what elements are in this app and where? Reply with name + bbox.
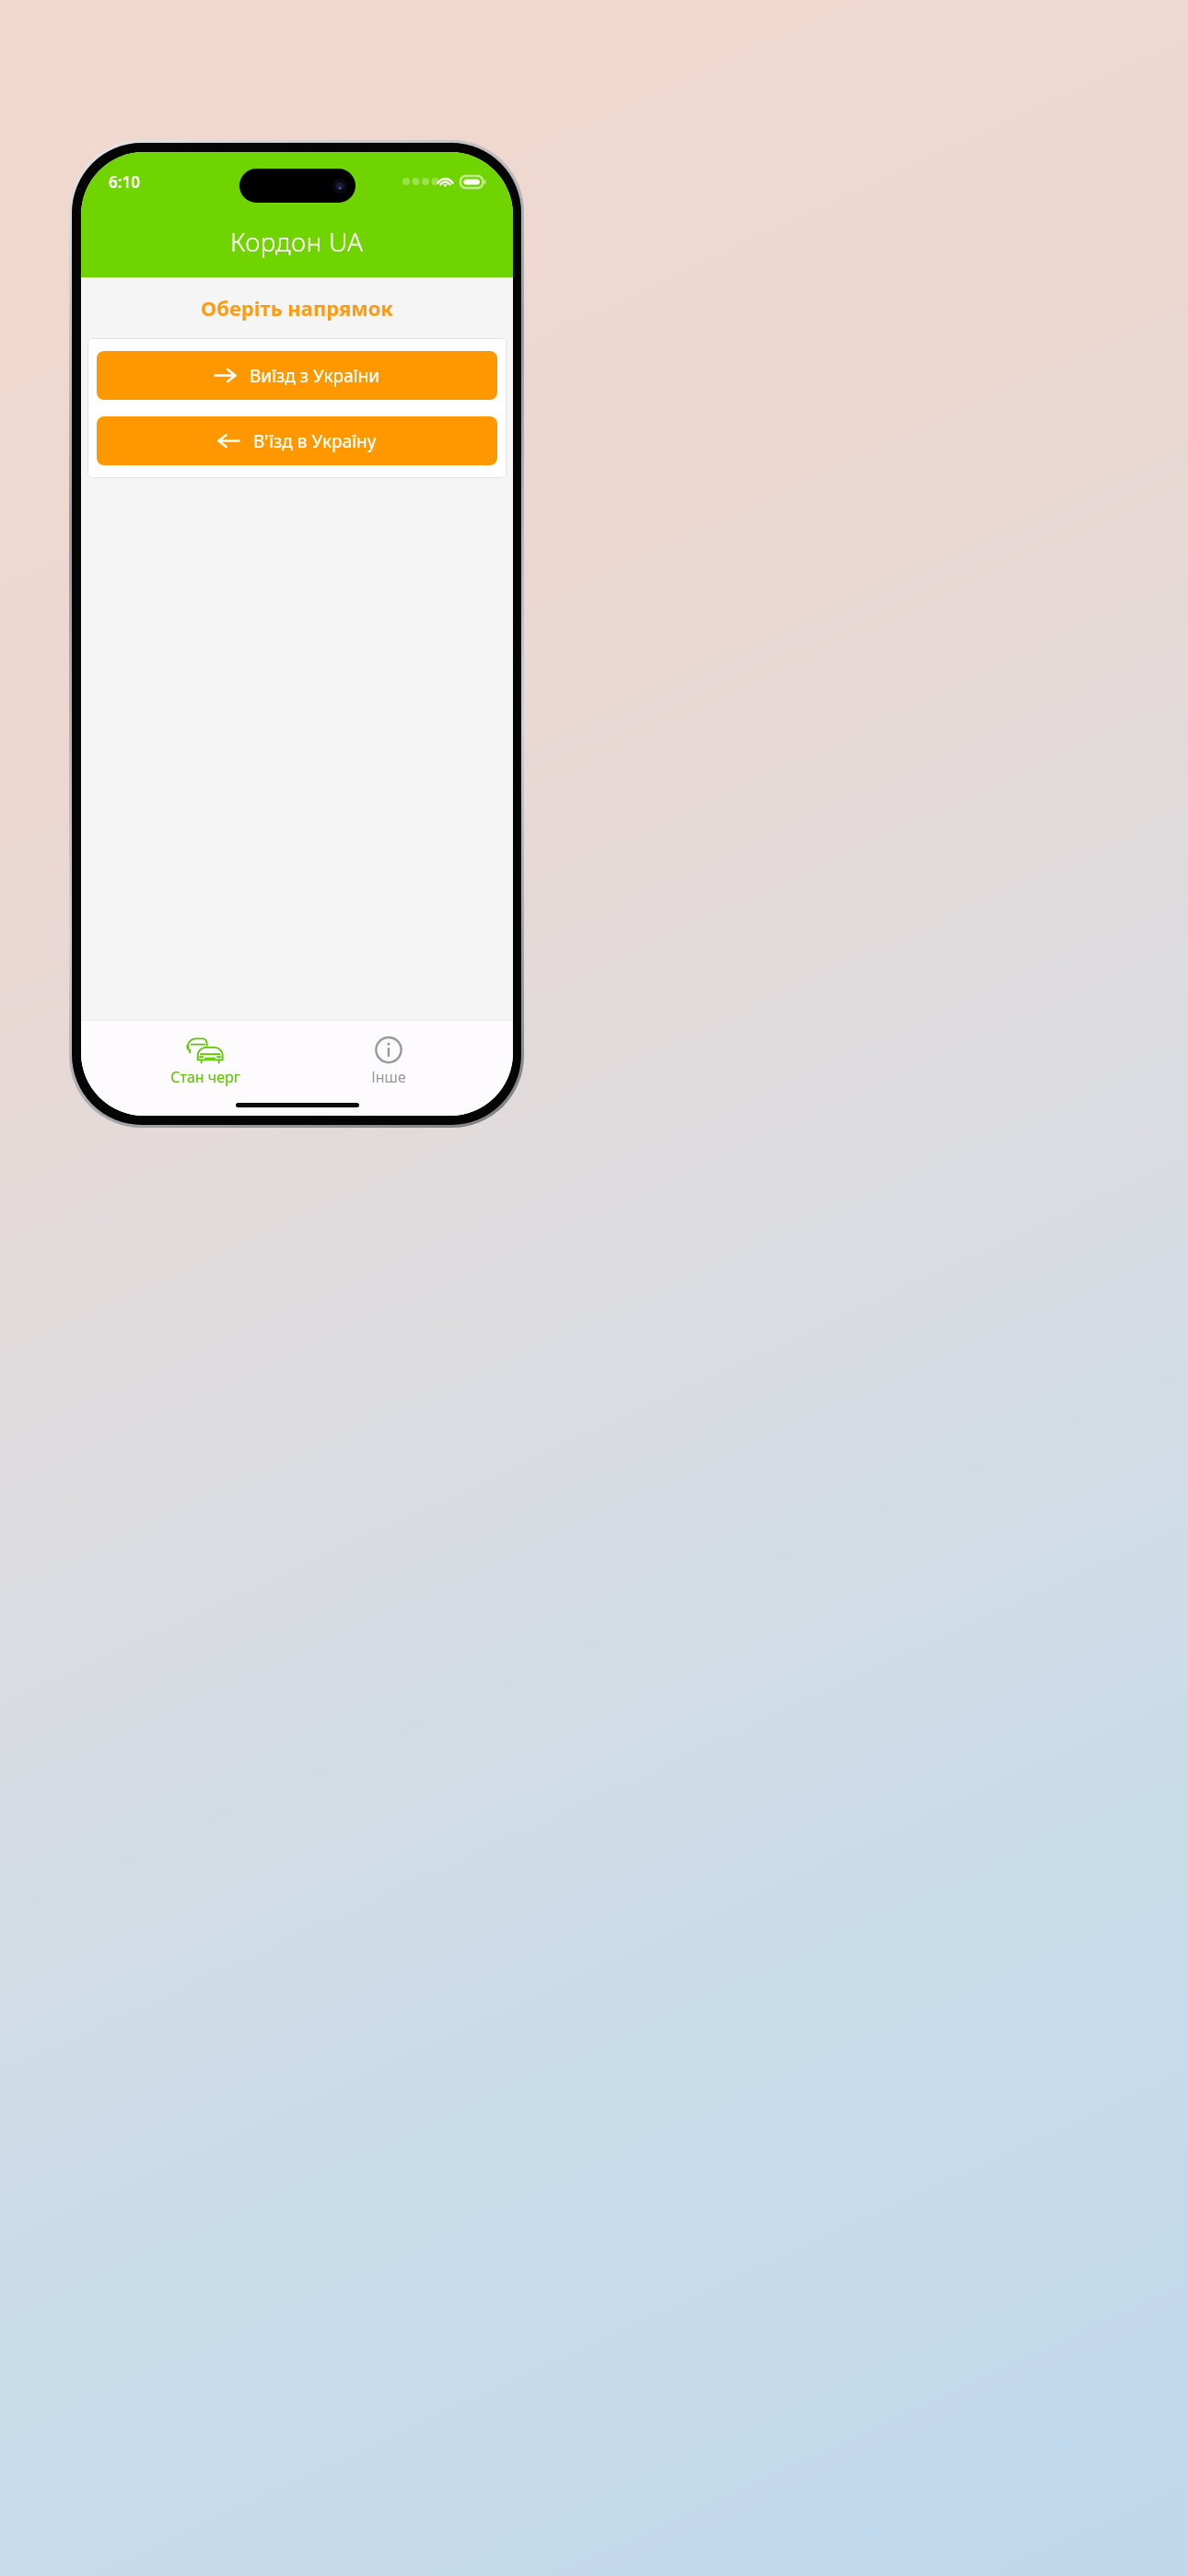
staticText: Кордон UA <box>230 224 364 259</box>
button[interactable]: Виїзд з України <box>97 351 497 400</box>
staticText: В'їзд в Україну <box>253 429 377 453</box>
button[interactable]: Other <box>329 1033 448 1091</box>
staticText: 6:10 <box>109 171 140 193</box>
other: Queue status <box>187 1036 224 1065</box>
button[interactable]: В'їзд в Україну <box>97 416 497 465</box>
staticText: Стан черг <box>170 1067 240 1087</box>
other: Other <box>370 1036 407 1065</box>
staticText: Виїзд з України <box>250 364 380 388</box>
button[interactable]: Queue status <box>146 1033 265 1091</box>
staticText: Оберіть напрямок <box>81 294 513 322</box>
staticText: Інше <box>371 1067 406 1087</box>
